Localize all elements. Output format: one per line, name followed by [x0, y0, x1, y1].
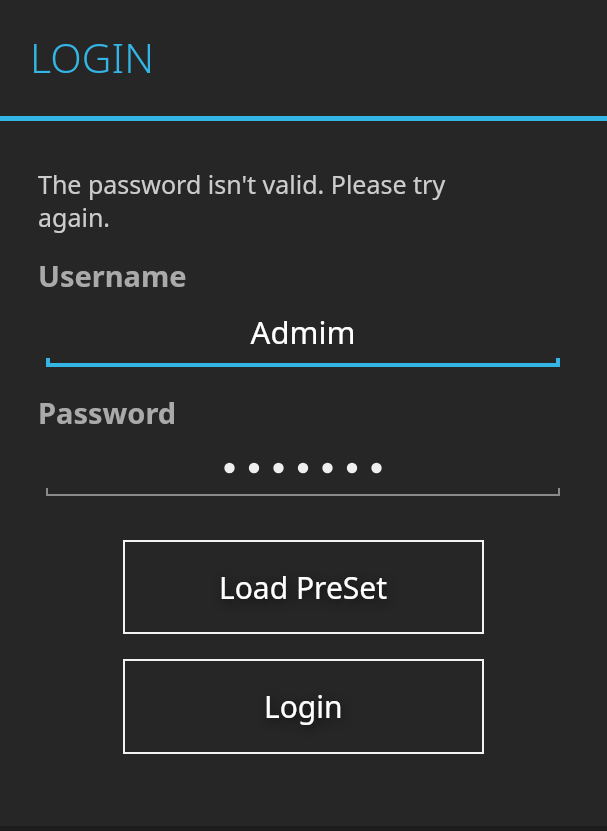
button[interactable]: Load PreSet — [123, 540, 484, 634]
button[interactable] — [46, 456, 560, 496]
staticText: LOGIN — [30, 29, 155, 85]
staticText: Login — [264, 686, 343, 727]
button[interactable]: Login — [123, 659, 484, 754]
staticText: Load PreSet — [219, 567, 388, 608]
button[interactable]: Admim — [46, 311, 560, 367]
staticText: The password isn't valid. Please try aga… — [38, 167, 497, 234]
staticText: Password — [38, 393, 177, 432]
staticText: Username — [38, 256, 187, 295]
staticText: Admim — [46, 311, 560, 353]
